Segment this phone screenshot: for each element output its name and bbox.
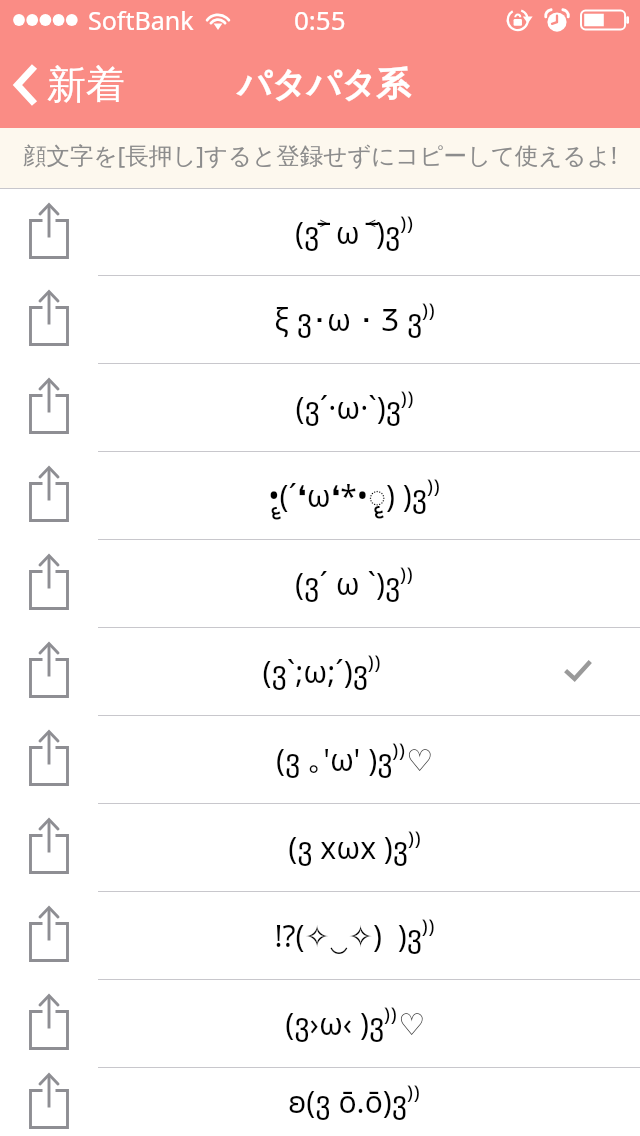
button[interactable]: Share kaomoji <box>0 539 97 627</box>
staticText: 新着 <box>47 60 125 109</box>
button[interactable]: Share kaomoji <box>0 715 640 803</box>
button[interactable]: Share kaomoji <box>0 539 640 627</box>
button[interactable]: Share kaomoji <box>0 1067 640 1136</box>
button[interactable]: Share kaomoji <box>0 715 97 803</box>
staticText: (ვ˃̵ ω ˂̵)ვ⁾⁾ <box>295 212 414 253</box>
button[interactable]: Share kaomoji <box>0 891 97 979</box>
other: Selected <box>565 661 591 681</box>
button[interactable]: Share kaomoji <box>0 1067 97 1136</box>
button[interactable]: Share kaomoji <box>0 275 97 363</box>
button[interactable]: Share kaomoji <box>0 189 640 275</box>
button[interactable]: Share kaomoji <box>0 979 97 1067</box>
staticText: 0:55 <box>294 2 346 37</box>
other: Back <box>14 63 38 107</box>
staticText: ξ ვ･ω ･ Ʒ ვ⁾⁾ <box>274 299 436 340</box>
staticText: ʚ(ვ ō.ō)ვ⁾⁾ <box>288 1081 421 1122</box>
button[interactable]: Back <box>0 52 137 117</box>
staticText: (ვ´ ω `)ვ⁾⁾ <box>295 563 414 604</box>
button[interactable]: Share kaomoji <box>0 275 640 363</box>
button[interactable]: Share kaomoji <box>0 627 640 715</box>
staticText: (ვ ｡'ω' )ვ⁾⁾♡ <box>276 739 433 780</box>
button[interactable]: Share kaomoji <box>0 363 640 451</box>
staticText: パタパタ系 <box>237 63 411 106</box>
staticText: (ვ´·ω·`)ვ⁾⁾ <box>295 387 415 428</box>
staticText: (ვ`;ω;´)ვ⁾⁾ <box>262 651 382 692</box>
staticText: (ვ xωx )ვ⁾⁾ <box>288 827 422 868</box>
button[interactable]: Share kaomoji <box>0 891 640 979</box>
staticText: •ॄ(ˊ❛ω❛*•ॄ) )ვ⁾⁾ <box>268 475 441 516</box>
button[interactable]: Share kaomoji <box>0 803 97 891</box>
staticText: 顔文字を[長押し]すると登録せずにコピーして使えるよ! <box>23 139 618 171</box>
button[interactable]: Share kaomoji <box>0 803 640 891</box>
button[interactable]: Share kaomoji <box>0 979 640 1067</box>
button[interactable]: Share kaomoji <box>0 189 97 275</box>
button[interactable]: Share kaomoji <box>0 363 97 451</box>
button[interactable]: Share kaomoji <box>0 451 640 539</box>
staticText: !?(✧‿✧) )ვ⁾⁾ <box>274 915 436 956</box>
button[interactable]: Share kaomoji <box>0 451 97 539</box>
staticText: SoftBank <box>88 3 194 37</box>
button[interactable]: Share kaomoji <box>0 627 97 715</box>
staticText: (ვ›ω‹ )ვ⁾⁾♡ <box>285 1003 425 1044</box>
